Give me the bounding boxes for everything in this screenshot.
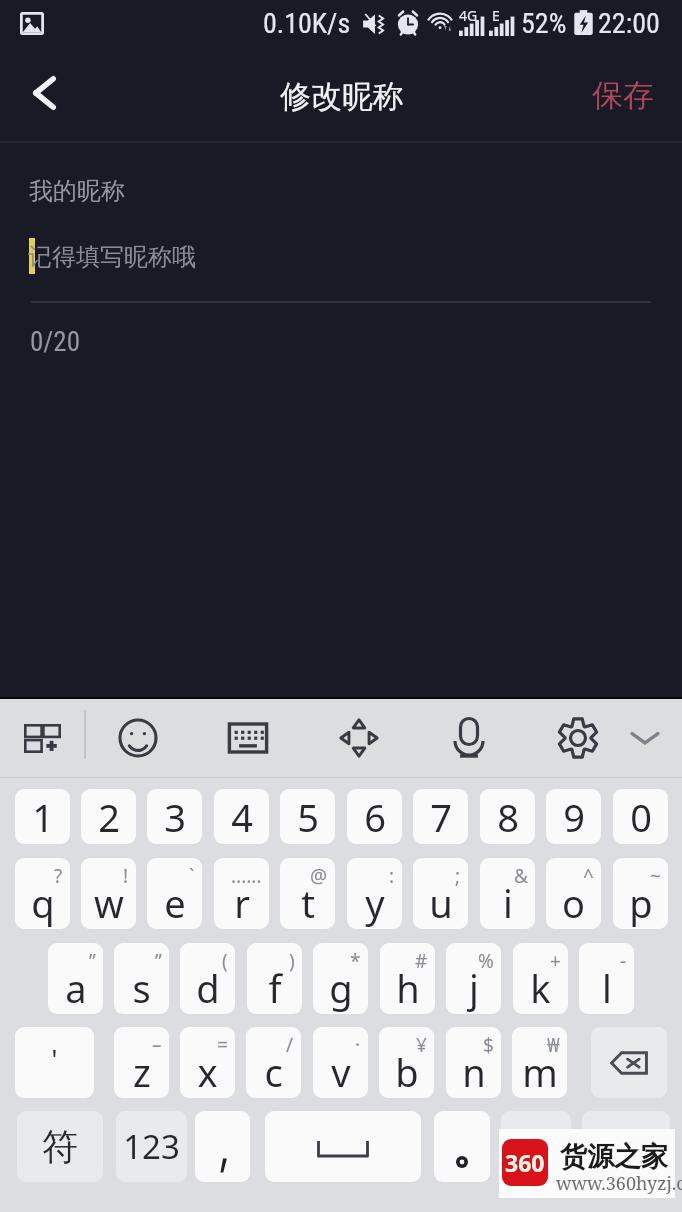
button[interactable]: * <box>313 943 368 1014</box>
staticText: ? <box>54 863 63 889</box>
staticText: t <box>301 877 315 929</box>
button[interactable]: ! <box>81 858 136 929</box>
button[interactable]: ...... <box>214 858 269 929</box>
button[interactable]: ^ <box>546 858 601 929</box>
button[interactable]: ₩ <box>512 1027 567 1098</box>
button[interactable]: Backspace <box>591 1027 667 1098</box>
staticText: 22:00 <box>598 7 660 40</box>
button[interactable]: Period <box>434 1111 490 1182</box>
button[interactable]: ¥ <box>379 1027 434 1098</box>
staticText: 5 <box>297 791 319 843</box>
staticText: r <box>234 877 250 929</box>
staticText: x <box>197 1046 218 1098</box>
staticText: # <box>415 948 428 974</box>
button[interactable]: Hide keyboard <box>617 711 673 765</box>
button[interactable]: Add panel <box>14 711 70 765</box>
button[interactable]: 6 <box>347 789 402 844</box>
button[interactable]: ˋ <box>147 858 202 929</box>
button[interactable]: · <box>313 1027 368 1098</box>
staticText: h <box>396 962 420 1014</box>
staticText: 52% <box>521 7 567 40</box>
button[interactable]: Enter <box>582 1111 670 1182</box>
button[interactable]: # <box>380 943 435 1014</box>
button[interactable]: ” <box>114 943 169 1014</box>
button[interactable]: 4 <box>214 789 269 844</box>
staticText: 2 <box>98 791 120 843</box>
staticText: ” <box>89 948 96 974</box>
staticText: ¥ <box>416 1032 427 1058</box>
button[interactable]: 3 <box>147 789 202 844</box>
button[interactable]: ( <box>180 943 235 1014</box>
button[interactable]: 1 <box>15 789 70 844</box>
staticText: & <box>514 863 528 889</box>
button[interactable]: 符 <box>17 1111 103 1182</box>
button[interactable]: : <box>347 858 402 929</box>
staticText: d <box>196 962 220 1014</box>
staticText: ˋ <box>189 863 195 889</box>
staticText: y <box>365 877 385 929</box>
staticText: 货源之家 <box>560 1140 668 1174</box>
staticText: ~ <box>650 863 661 889</box>
button[interactable]: Back <box>8 55 682 142</box>
staticText: $ <box>483 1032 494 1058</box>
button[interactable]: Space <box>265 1111 421 1182</box>
button[interactable]: 0 <box>613 789 668 844</box>
staticText: * <box>350 948 361 974</box>
button[interactable]: Settings <box>551 711 605 765</box>
staticText: f <box>268 962 282 1014</box>
staticText: s <box>132 962 151 1014</box>
button[interactable]: 9 <box>546 789 601 844</box>
button[interactable]: 保存 <box>592 79 654 118</box>
staticText: ” <box>155 948 162 974</box>
staticText: 0/20 <box>30 326 81 358</box>
staticText: - <box>620 948 627 974</box>
button[interactable]: = <box>180 1027 235 1098</box>
staticText: 123 <box>123 1124 180 1169</box>
staticText: j <box>469 962 479 1014</box>
staticText: 保存 <box>592 76 654 115</box>
button[interactable]: Arrow keys <box>332 711 386 765</box>
button[interactable]: ; <box>413 858 468 929</box>
staticText: n <box>462 1046 486 1098</box>
staticText: 符 <box>42 1124 78 1169</box>
button[interactable]: 5 <box>280 789 335 844</box>
button[interactable]: - <box>579 943 634 1014</box>
button[interactable]: 7 <box>413 789 468 844</box>
button[interactable]: 123 <box>116 1111 187 1182</box>
button[interactable]: Emoji <box>111 711 165 765</box>
button[interactable]: / <box>246 1027 301 1098</box>
staticText: v <box>331 1046 351 1098</box>
button[interactable]: + <box>513 943 568 1014</box>
staticText: @ <box>310 863 328 889</box>
button[interactable]: & <box>480 858 535 929</box>
button[interactable]: Keyboard layout <box>221 711 275 765</box>
button[interactable]: @ <box>280 858 335 929</box>
staticText: c <box>264 1046 283 1098</box>
button[interactable]: 2 <box>81 789 136 844</box>
staticText: 0 <box>630 791 652 843</box>
staticText: : <box>389 863 395 889</box>
staticText: = <box>217 1032 228 1058</box>
staticText: 0.10K/s <box>263 7 351 40</box>
staticText: % <box>478 948 494 974</box>
button[interactable]: ) <box>247 943 302 1014</box>
button[interactable]: ” <box>48 943 103 1014</box>
button[interactable]: Comma <box>195 1111 250 1182</box>
staticText: a <box>65 962 87 1014</box>
staticText: 1 <box>32 791 54 843</box>
button[interactable]: ~ <box>613 858 668 929</box>
staticText: q <box>31 877 55 929</box>
button[interactable]: 8 <box>480 789 535 844</box>
staticText: ; <box>455 863 461 889</box>
button[interactable]: – <box>114 1027 169 1098</box>
staticText: 9 <box>563 791 585 843</box>
button[interactable]: $ <box>446 1027 501 1098</box>
button[interactable]: ? <box>15 858 70 929</box>
button[interactable]: % <box>446 943 501 1014</box>
staticText: 4 <box>231 791 253 843</box>
staticText: u <box>429 877 453 929</box>
button[interactable]: Voice input <box>442 711 496 765</box>
button[interactable]: ' <box>15 1027 94 1098</box>
staticText: 我的昵称 <box>29 176 125 206</box>
button[interactable]: Emoji keys <box>501 1111 571 1182</box>
